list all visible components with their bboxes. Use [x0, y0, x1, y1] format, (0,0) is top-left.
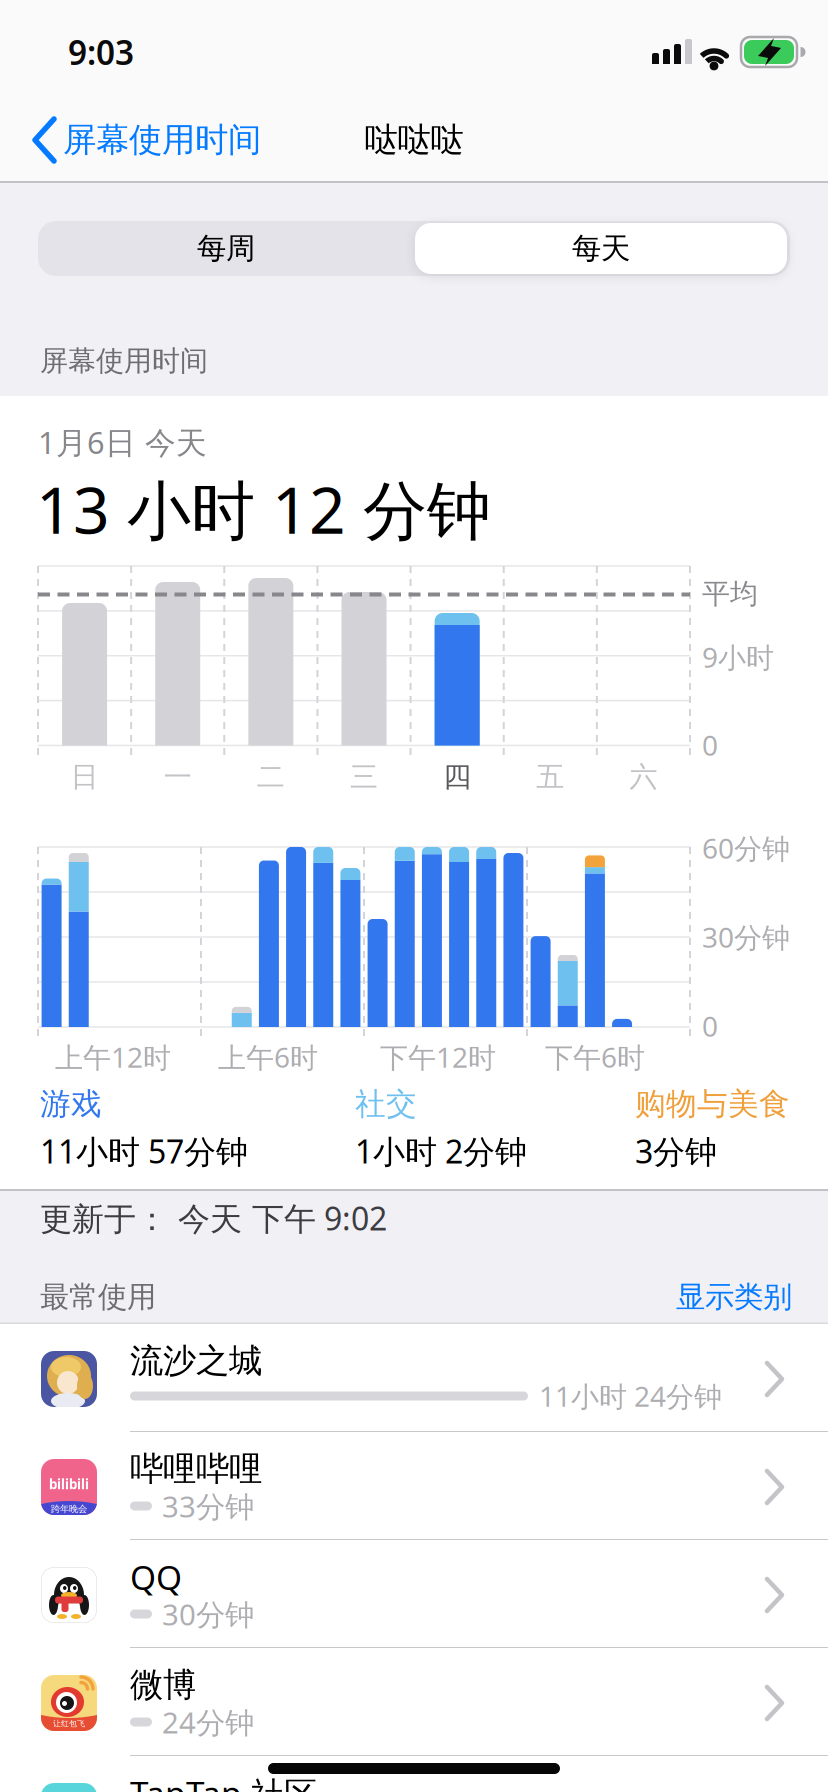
staticText: 9小时 [702, 638, 774, 676]
staticText: 流沙之城 [130, 1340, 262, 1381]
button[interactable]: 每周 [41, 221, 411, 276]
staticText: 0 [702, 1007, 718, 1045]
staticText: 二 [257, 760, 285, 794]
staticText: 11小时 57分钟 [40, 1130, 248, 1172]
staticText: 每周 [197, 230, 255, 266]
staticText: 哒哒哒 [364, 119, 463, 160]
staticText: 六 [629, 760, 657, 794]
staticText: 13 小时 12 分钟 [36, 466, 491, 551]
staticText: 五 [536, 760, 564, 794]
staticText: 社交 [355, 1085, 417, 1123]
staticText: 跨年晚会 [51, 1503, 87, 1515]
staticText: 平均 [702, 577, 758, 611]
staticText: 显示类别 [676, 1279, 792, 1315]
staticText: TapTap 社区 [130, 1771, 317, 1792]
button[interactable]: 返回 屏幕使用时间 [30, 115, 350, 165]
staticText: 0 [702, 726, 718, 764]
staticText: 三 [350, 760, 378, 794]
staticText: 上午6时 [218, 1038, 318, 1076]
staticText: 3分钟 [635, 1130, 717, 1172]
staticText: 9:03 [68, 30, 134, 74]
button[interactable]: 流沙之城 [0, 1324, 828, 1432]
staticText: 屏幕使用时间 [63, 119, 261, 160]
staticText: 24分钟 [162, 1702, 254, 1741]
staticText: 下午12时 [380, 1038, 496, 1076]
staticText: 每天 [572, 230, 630, 266]
staticText: 1小时 2分钟 [355, 1130, 527, 1172]
staticText: 1月6日 今天 [38, 422, 207, 462]
staticText: 四 [443, 760, 471, 794]
staticText: 更新于： 今天 下午 9:02 [40, 1197, 387, 1239]
staticText: 上午12时 [55, 1038, 171, 1076]
staticText: 购物与美食 [635, 1085, 790, 1123]
button[interactable]: bilibili [0, 1432, 828, 1540]
button[interactable]: TapTap 社区 [0, 1756, 828, 1792]
staticText: QQ [130, 1555, 182, 1599]
button[interactable]: 让红包飞 [0, 1648, 828, 1756]
staticText: 让红包飞 [53, 1719, 85, 1728]
staticText: 一 [164, 760, 192, 794]
staticText: 下午6时 [545, 1038, 645, 1076]
button[interactable]: QQ [0, 1540, 828, 1648]
staticText: 哔哩哔哩 [130, 1448, 262, 1489]
button[interactable]: 显示类别 [676, 1279, 792, 1315]
staticText: 游戏 [40, 1085, 102, 1123]
staticText: 最常使用 [40, 1279, 156, 1315]
staticText: bilibili [49, 1475, 89, 1493]
button[interactable]: 每天 [415, 223, 787, 274]
staticText: 30分钟 [162, 1594, 254, 1633]
staticText: 60分钟 [702, 829, 790, 867]
staticText: 33分钟 [162, 1486, 254, 1525]
staticText: 11小时 24分钟 [539, 1377, 722, 1415]
staticText: 30分钟 [702, 918, 790, 956]
staticText: 屏幕使用时间 [40, 344, 208, 378]
staticText: 日 [71, 760, 99, 794]
staticText: 微博 [130, 1664, 196, 1705]
